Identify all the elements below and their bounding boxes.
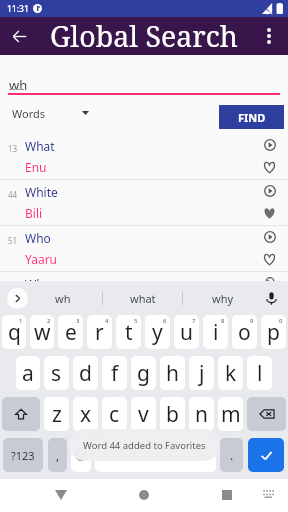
button[interactable]: t [116, 315, 141, 349]
button[interactable]: 13 [0, 134, 288, 179]
staticText: s [51, 359, 62, 388]
staticText: wh [9, 76, 28, 94]
button[interactable]: g [131, 356, 156, 390]
staticText: g [137, 359, 150, 388]
button[interactable]: x [73, 397, 98, 431]
button[interactable]: ?123 [3, 438, 43, 472]
button[interactable]: Space [95, 438, 216, 472]
button[interactable]: Add to favorites [251, 154, 288, 179]
staticText: n [195, 400, 208, 429]
staticText: 51 [8, 235, 18, 246]
button[interactable]: Home [114, 479, 174, 512]
button[interactable]: Add to favorites [251, 246, 288, 271]
button[interactable]: FIND [219, 105, 284, 129]
button[interactable]: p [261, 315, 286, 349]
button[interactable]: Shift [2, 397, 40, 431]
button[interactable]: a [16, 356, 40, 390]
button[interactable]: Back [0, 17, 38, 55]
button[interactable]: Enter [248, 438, 284, 472]
button[interactable]: Add to favorites [251, 200, 288, 225]
staticText: White [25, 184, 251, 200]
button[interactable]: j [189, 356, 214, 390]
button[interactable]: q [2, 315, 26, 349]
staticText: m [221, 400, 241, 429]
staticText: 4 [105, 317, 109, 325]
button[interactable]: Words [6, 105, 96, 129]
button[interactable]: Play pronunciation [251, 134, 288, 154]
button[interactable]: 51 [0, 226, 288, 271]
staticText: x [80, 400, 92, 429]
button[interactable]: y [145, 315, 170, 349]
button[interactable]: n [189, 397, 214, 431]
staticText: e [65, 318, 77, 347]
button[interactable]: Play pronunciation [251, 276, 288, 285]
staticText: Global Search [50, 17, 238, 55]
button[interactable]: o [232, 315, 257, 349]
staticText: v [138, 400, 149, 429]
staticText: why [212, 291, 234, 306]
staticText: 8 [221, 317, 225, 325]
staticText: 13 [8, 143, 18, 154]
staticText: b [166, 400, 179, 429]
staticText: d [79, 359, 92, 388]
staticText: w [34, 318, 51, 347]
button[interactable]: Why [0, 272, 288, 281]
button[interactable]: w [30, 315, 54, 349]
staticText: k [225, 359, 237, 388]
staticText: r [95, 318, 104, 347]
staticText: o [238, 318, 251, 347]
button[interactable]: i [203, 315, 228, 349]
button[interactable]: More options [250, 17, 288, 55]
button[interactable]: Emoji [71, 438, 91, 472]
staticText: 6 [163, 317, 167, 325]
button[interactable]: m [218, 397, 243, 431]
staticText: ?123 [11, 448, 35, 463]
button[interactable]: k [218, 356, 243, 390]
staticText: 11:31 [7, 3, 29, 15]
button[interactable]: , [48, 438, 67, 472]
staticText: Bili [25, 205, 251, 221]
button[interactable]: f [102, 356, 127, 390]
button[interactable]: s [44, 356, 69, 390]
staticText: l [257, 359, 263, 388]
staticText: p [267, 318, 280, 347]
staticText: z [52, 400, 62, 429]
staticText: Enu [25, 159, 251, 175]
button[interactable]: b [160, 397, 185, 431]
button[interactable]: Back [31, 479, 91, 512]
staticText: Yaaru [25, 251, 251, 267]
button[interactable]: what [103, 281, 182, 315]
button[interactable]: v [131, 397, 156, 431]
button[interactable]: Voice input [262, 281, 288, 315]
staticText: what [130, 291, 156, 306]
button[interactable]: l [247, 356, 272, 390]
staticText: 3 [76, 317, 80, 325]
button[interactable]: 44 [0, 180, 288, 225]
staticText: h [166, 359, 179, 388]
staticText: What [25, 138, 251, 154]
button[interactable]: . [220, 438, 243, 472]
button[interactable]: Expand suggestions [0, 281, 24, 315]
button[interactable]: h [160, 356, 185, 390]
button[interactable]: u [174, 315, 199, 349]
button[interactable]: Recent apps [197, 479, 257, 512]
staticText: f [111, 359, 119, 388]
button[interactable]: d [73, 356, 98, 390]
button[interactable]: r [87, 315, 112, 349]
button[interactable]: Play pronunciation [251, 226, 288, 246]
staticText: t [125, 318, 133, 347]
button[interactable]: Switch keyboard [254, 479, 284, 512]
button[interactable]: c [102, 397, 127, 431]
button[interactable]: Backspace [247, 397, 286, 431]
button[interactable]: z [44, 397, 69, 431]
button[interactable]: wh [24, 281, 102, 315]
staticText: 5 [134, 317, 138, 325]
staticText: 1 [19, 317, 23, 325]
staticText: FIND [238, 110, 266, 125]
staticText: c [109, 400, 120, 429]
staticText: q [8, 318, 21, 347]
button[interactable]: Play pronunciation [251, 180, 288, 200]
staticText: Words [12, 106, 46, 121]
button[interactable]: e [58, 315, 83, 349]
button[interactable]: why [183, 281, 262, 315]
